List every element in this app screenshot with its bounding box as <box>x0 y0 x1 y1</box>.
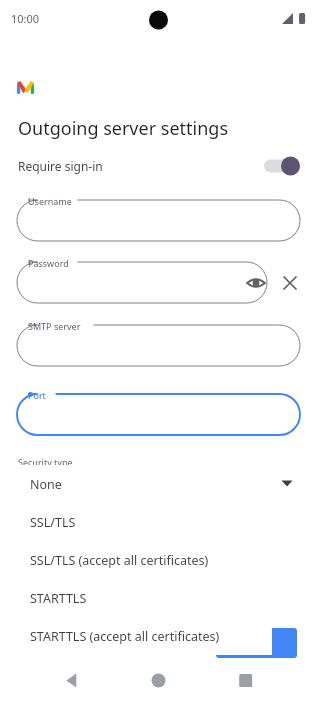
button[interactable]: SSL/TLS <box>12 503 272 541</box>
staticText: STARTTLS (accept all certificates) <box>30 628 220 645</box>
button[interactable]: STARTTLS <box>12 579 272 617</box>
staticText: 10:00 <box>11 11 40 26</box>
staticText: SSL/TLS <box>30 514 76 531</box>
button[interactable]: STARTTLS (accept all certificates) <box>12 617 272 655</box>
button[interactable]: Show password <box>244 271 268 295</box>
staticText: SSL/TLS (accept all certificates) <box>30 552 209 569</box>
button[interactable]: Username <box>17 200 317 241</box>
button[interactable]: Clear password <box>278 271 302 295</box>
button[interactable]: SSL/TLS (accept all certificates) <box>12 541 272 579</box>
staticText: STARTTLS <box>30 590 87 607</box>
staticText: Port <box>28 389 46 401</box>
button[interactable]: Port <box>17 394 317 435</box>
staticText: Outgoing server settings <box>18 116 229 141</box>
button[interactable]: NEXT <box>216 628 297 658</box>
staticText: Username <box>28 195 72 207</box>
button[interactable]: Require sign-in <box>0 151 317 181</box>
button[interactable]: Security type dropdown <box>276 472 298 494</box>
staticText: None <box>30 476 62 493</box>
staticText: Require sign-in <box>18 158 103 174</box>
button[interactable]: None <box>12 465 272 503</box>
button[interactable]: Password <box>17 262 284 303</box>
button[interactable]: SMTP server <box>17 325 317 366</box>
staticText: Security type <box>18 456 73 468</box>
staticText: SMTP server <box>28 320 81 332</box>
staticText: Password <box>28 257 69 269</box>
